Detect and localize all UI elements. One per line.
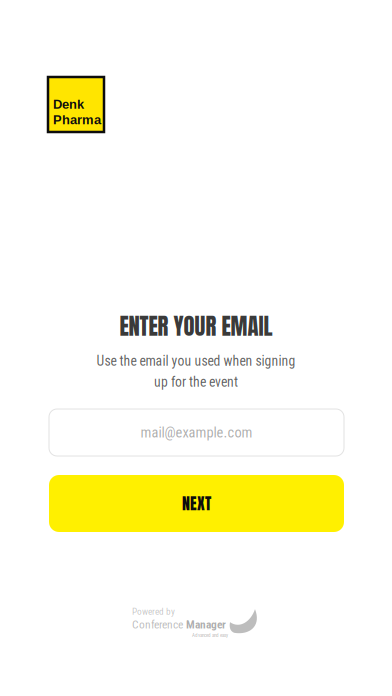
- button[interactable]: mail@example.com: [49, 409, 344, 456]
- staticText: Use the email you used when signing: [96, 353, 295, 369]
- button[interactable]: NEXT: [49, 475, 344, 532]
- staticText: Pharma: [53, 113, 101, 127]
- staticText: Manager: [186, 618, 226, 631]
- staticText: Denk: [53, 97, 84, 111]
- staticText: Powered by: [132, 606, 175, 617]
- staticText: NEXT: [182, 491, 211, 516]
- staticText: Advanced and easy: [192, 632, 228, 638]
- staticText: Conference: [132, 618, 183, 631]
- staticText: ENTER YOUR EMAIL: [119, 309, 272, 343]
- staticText: up for the event: [154, 374, 238, 390]
- staticText: mail@example.com: [140, 424, 252, 441]
